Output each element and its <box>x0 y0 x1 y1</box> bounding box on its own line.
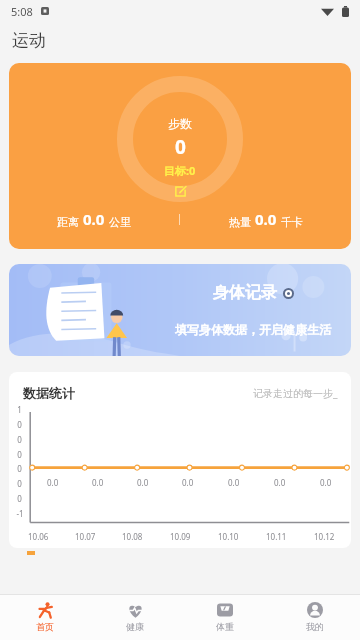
staticText: 0.0 <box>320 477 332 488</box>
staticText: 运动 <box>12 30 46 51</box>
button[interactable]: 健康 <box>90 595 180 640</box>
staticText: 0 <box>17 463 22 474</box>
staticText: 千卡 <box>281 215 303 229</box>
staticText: 目标:0 <box>164 163 196 178</box>
staticText: 记录走过的每一步_ <box>253 386 338 400</box>
staticText: 0 <box>17 419 22 430</box>
staticText: 健康 <box>126 621 144 632</box>
staticText: 0.0 <box>228 477 240 488</box>
staticText: 公里 <box>109 215 131 229</box>
staticText: 0.0 <box>255 209 277 229</box>
other: 健康 <box>127 602 144 619</box>
staticText: 我的 <box>306 621 324 632</box>
staticText: 热量 <box>229 215 251 229</box>
staticText: 0.0 <box>274 477 286 488</box>
staticText: 0 <box>17 449 22 460</box>
staticText: 0.0 <box>137 477 149 488</box>
staticText: 0 <box>17 493 22 504</box>
staticText: 体重 <box>216 621 234 632</box>
button[interactable]: 步数 <box>9 63 351 249</box>
staticText: 10.08 <box>122 531 143 542</box>
staticText: 10.11 <box>266 531 287 542</box>
staticText: 0 <box>17 478 22 489</box>
staticText: 10.12 <box>314 531 335 542</box>
other: 体重 <box>217 602 233 618</box>
staticText: 0 <box>175 134 186 160</box>
staticText: 0.0 <box>47 477 59 488</box>
staticText: 首页 <box>36 621 54 632</box>
button[interactable]: 我的 <box>270 595 360 640</box>
staticText: 填写身体数据，开启健康生活 <box>175 322 331 337</box>
button[interactable]: 编辑步数目标 <box>171 182 189 200</box>
staticText: 数据统计 <box>23 385 75 401</box>
staticText: 1 <box>17 404 22 415</box>
button[interactable]: 数据统计 <box>9 372 351 548</box>
staticText: 0.0 <box>182 477 194 488</box>
button[interactable]: 首页 <box>0 595 90 640</box>
button[interactable]: 体重 <box>180 595 270 640</box>
staticText: 0.0 <box>92 477 104 488</box>
staticText: 5:08 <box>11 4 33 19</box>
staticText: 10.10 <box>218 531 239 542</box>
staticText: 10.07 <box>75 531 96 542</box>
staticText: 0.0 <box>83 209 105 229</box>
staticText: 10.09 <box>170 531 191 542</box>
other: 首页 <box>37 602 54 619</box>
staticText: 距离 <box>57 215 79 229</box>
button[interactable]: 身体记录 <box>9 264 351 356</box>
staticText: 身体记录 <box>213 283 277 303</box>
staticText: 10.06 <box>28 531 49 542</box>
other: 我的 <box>307 602 323 618</box>
staticText: -1 <box>16 508 24 519</box>
staticText: 0 <box>17 434 22 445</box>
staticText: 步数 <box>168 116 192 131</box>
